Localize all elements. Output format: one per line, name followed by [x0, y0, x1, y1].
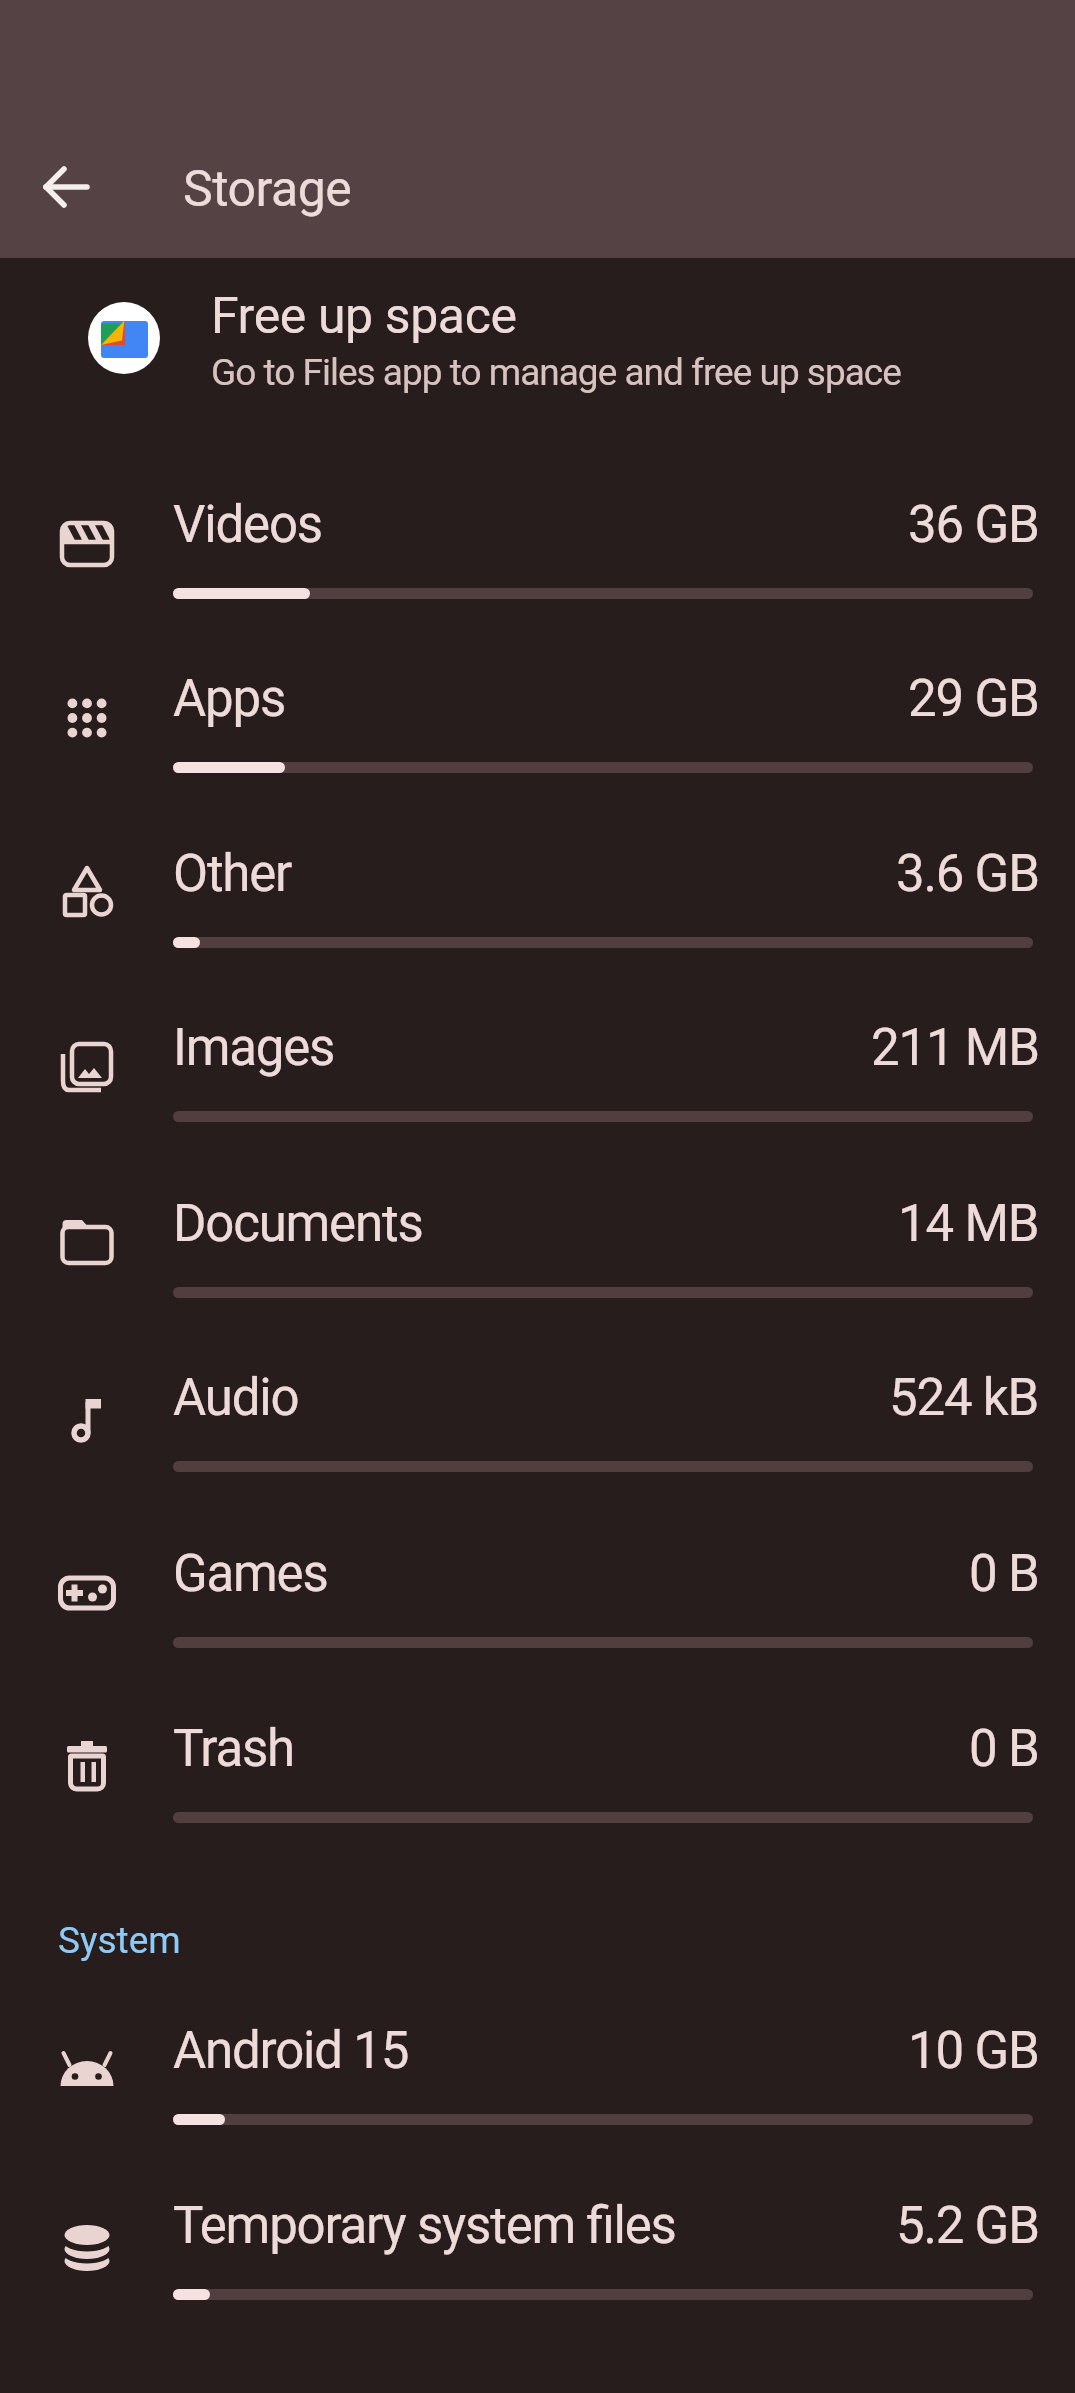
staticText: Go to Files app to manage and free up sp… — [211, 351, 901, 394]
staticText: Apps — [173, 669, 286, 729]
staticText: System — [58, 1919, 181, 1962]
button[interactable] — [0, 2189, 1075, 2364]
staticText: Documents — [173, 1194, 423, 1254]
staticText: 36 GB — [908, 495, 1039, 555]
staticText: 29 GB — [908, 669, 1039, 729]
button[interactable] — [0, 1712, 1075, 1887]
staticText: 0 B — [969, 1544, 1039, 1604]
button[interactable] — [0, 1361, 1075, 1536]
staticText: 10 GB — [908, 2021, 1039, 2081]
staticText: Android 15 — [173, 2021, 409, 2081]
staticText: Temporary system files — [173, 2196, 676, 2256]
staticText: Audio — [173, 1368, 299, 1428]
staticText: Trash — [173, 1719, 295, 1779]
staticText: Images — [173, 1018, 335, 1078]
staticText: Free up space — [211, 287, 517, 346]
staticText: 3.6 GB — [896, 844, 1039, 904]
staticText: Other — [173, 844, 292, 904]
staticText: 211 MB — [871, 1018, 1039, 1078]
staticText: Videos — [173, 495, 322, 555]
button[interactable] — [0, 662, 1075, 837]
button[interactable] — [0, 1011, 1075, 1186]
button[interactable] — [0, 837, 1075, 1012]
staticText: 0 B — [969, 1719, 1039, 1779]
staticText: 5.2 GB — [896, 2196, 1039, 2256]
button[interactable] — [0, 2014, 1075, 2189]
button[interactable] — [0, 1537, 1075, 1712]
button[interactable] — [0, 488, 1075, 663]
button[interactable] — [18, 139, 114, 235]
staticText: 14 MB — [898, 1194, 1039, 1254]
staticText: Games — [173, 1544, 328, 1604]
staticText: 524 kB — [889, 1368, 1039, 1428]
staticText: Storage — [183, 160, 352, 219]
button[interactable] — [0, 266, 1075, 410]
button[interactable] — [0, 1187, 1075, 1362]
